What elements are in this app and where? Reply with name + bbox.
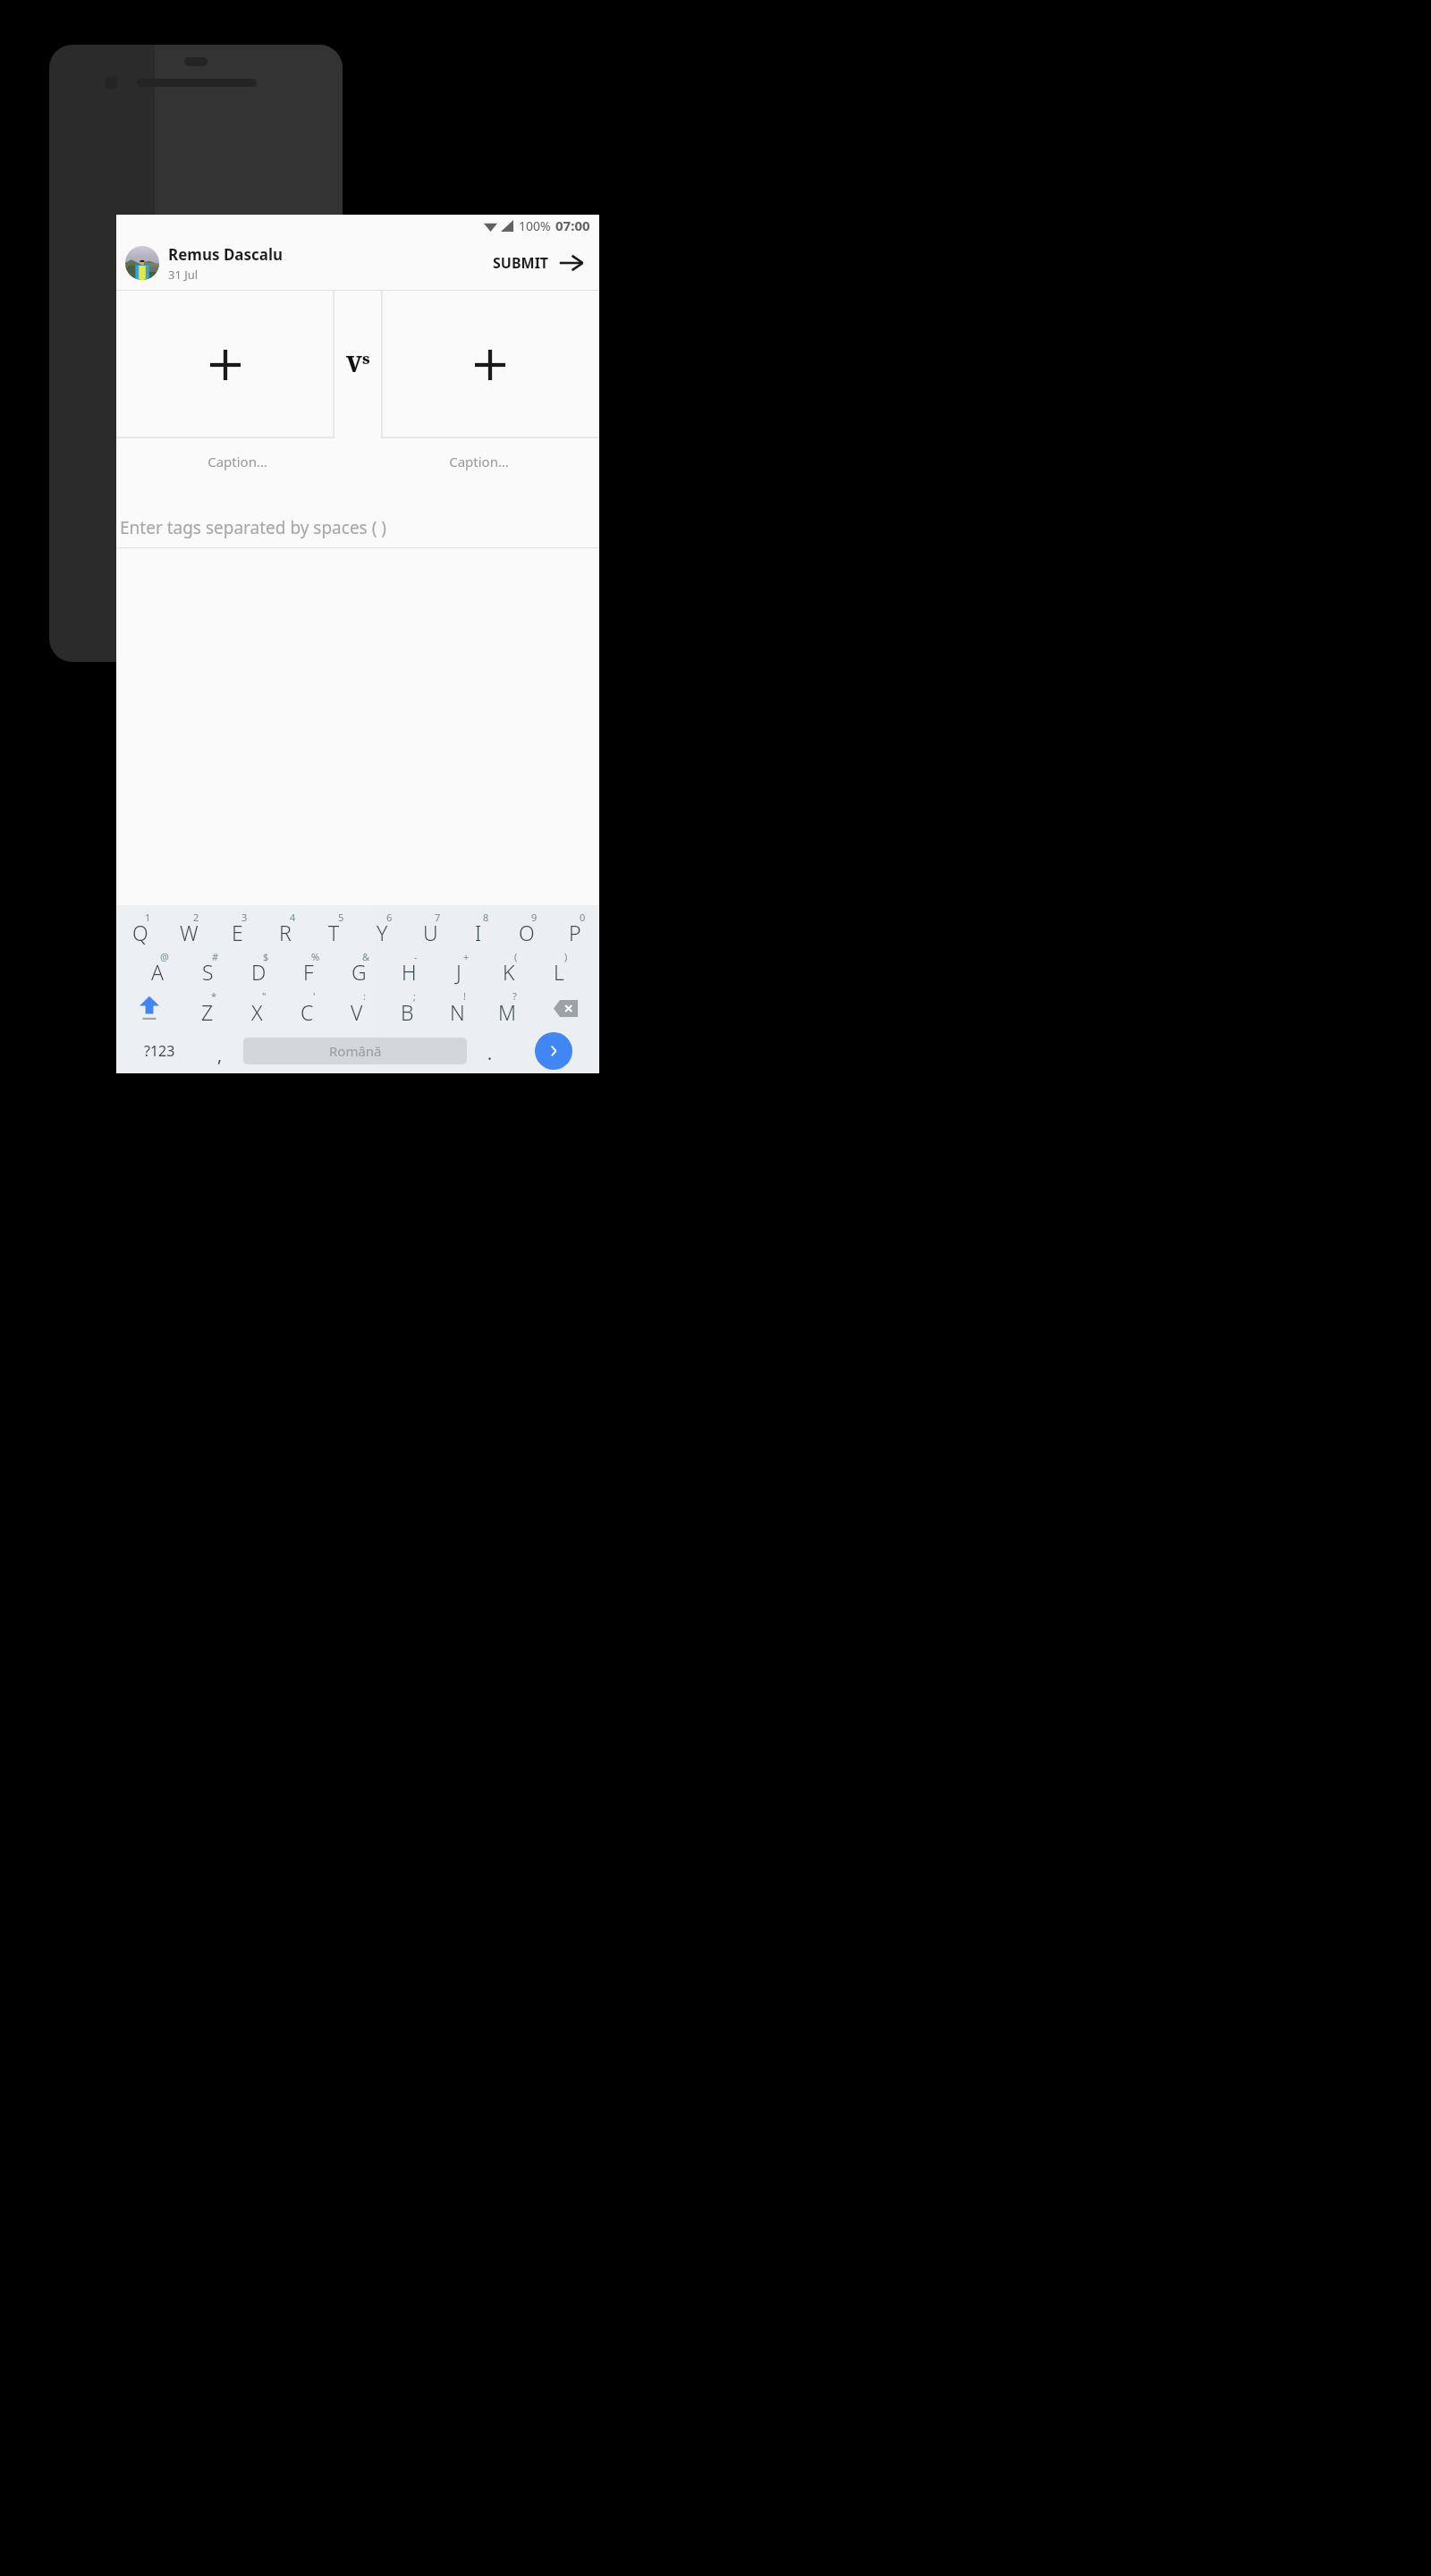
staticText: C xyxy=(301,998,314,1026)
staticText: T xyxy=(328,919,340,946)
staticText: 31 Jul xyxy=(168,267,199,283)
staticText: ' xyxy=(313,989,316,1003)
button[interactable]: 5 xyxy=(309,909,358,948)
button[interactable]: Enter xyxy=(535,1032,572,1070)
staticText: ( xyxy=(514,950,518,963)
button[interactable]: . xyxy=(467,1029,513,1073)
staticText: Z xyxy=(201,998,214,1026)
button[interactable]: 8 xyxy=(454,909,503,948)
staticText: D xyxy=(251,958,267,986)
button[interactable]: Enter tags separated by spaces ( ) xyxy=(116,508,599,547)
staticText: % xyxy=(311,950,320,963)
staticText: + xyxy=(463,950,470,963)
button[interactable]: 7 xyxy=(406,909,454,948)
staticText: # xyxy=(212,950,219,963)
staticText: P xyxy=(569,919,581,946)
button[interactable]: 6 xyxy=(358,909,406,948)
staticText: J xyxy=(456,958,461,986)
staticText: . xyxy=(487,1042,493,1065)
staticText: U xyxy=(423,919,438,946)
staticText: ) xyxy=(564,950,568,963)
staticText: L xyxy=(554,958,564,986)
button[interactable]: Add image xyxy=(116,291,334,438)
other: Profile picture xyxy=(125,246,159,280)
button[interactable]: ( xyxy=(484,948,534,987)
staticText: 1 xyxy=(145,911,151,924)
button[interactable]: # xyxy=(182,948,233,987)
staticText: 3 xyxy=(241,911,248,924)
staticText: V xyxy=(346,348,362,378)
button[interactable]: $ xyxy=(233,948,284,987)
button[interactable]: & xyxy=(334,948,384,987)
button[interactable]: 2 xyxy=(165,909,213,948)
staticText: S xyxy=(202,958,214,986)
button[interactable]: * xyxy=(182,987,232,1029)
staticText: @ xyxy=(160,950,169,963)
staticText: : xyxy=(363,989,366,1003)
staticText: 6 xyxy=(386,911,393,924)
staticText: V xyxy=(351,998,363,1026)
button[interactable]: + xyxy=(434,948,484,987)
button[interactable]: % xyxy=(284,948,334,987)
button[interactable]: @ xyxy=(131,948,182,987)
staticText: I xyxy=(475,919,482,946)
button[interactable]: 1 xyxy=(116,909,165,948)
staticText: 8 xyxy=(483,911,489,924)
staticText: R xyxy=(279,919,292,946)
button[interactable]: Caption… xyxy=(358,438,599,485)
staticText: E xyxy=(232,919,243,946)
staticText: Română xyxy=(329,1042,382,1060)
button[interactable]: 9 xyxy=(503,909,551,948)
button[interactable]: Add image xyxy=(381,291,599,438)
staticText: & xyxy=(362,950,370,963)
staticText: W xyxy=(180,919,199,946)
staticText: ; xyxy=(413,989,416,1003)
staticText: 2 xyxy=(193,911,199,924)
button[interactable]: 4 xyxy=(261,909,309,948)
button[interactable]: ) xyxy=(534,948,584,987)
staticText: X xyxy=(251,998,263,1026)
button[interactable]: Shift xyxy=(116,987,182,1029)
button[interactable]: ?123 xyxy=(122,1029,197,1073)
staticText: Remus Dascalu xyxy=(168,244,284,265)
staticText: 100% xyxy=(519,217,551,234)
staticText: B xyxy=(401,998,414,1026)
button[interactable]: - xyxy=(384,948,434,987)
staticText: s xyxy=(362,348,370,369)
staticText: * xyxy=(211,989,217,1003)
staticText: Caption… xyxy=(449,453,509,470)
staticText: H xyxy=(402,958,417,986)
staticText: , xyxy=(217,1044,223,1067)
staticText: Enter tags separated by spaces ( ) xyxy=(120,516,386,539)
staticText: SUBMIT xyxy=(493,253,549,273)
staticText: O xyxy=(519,919,535,946)
button[interactable]: Caption… xyxy=(116,438,358,485)
staticText: K xyxy=(503,958,515,986)
button[interactable]: : xyxy=(332,987,382,1029)
staticText: ? xyxy=(512,989,517,1003)
staticText: $ xyxy=(263,950,269,963)
staticText: G xyxy=(351,958,367,986)
staticText: 9 xyxy=(531,911,538,924)
button[interactable]: ' xyxy=(282,987,332,1029)
staticText: 07:00 xyxy=(555,216,590,234)
staticText: 5 xyxy=(338,911,344,924)
button[interactable]: ? xyxy=(482,987,532,1029)
staticText: 0 xyxy=(580,911,586,924)
staticText: Q xyxy=(132,919,148,946)
button[interactable]: " xyxy=(232,987,282,1029)
button[interactable]: 0 xyxy=(551,909,599,948)
staticText: ?123 xyxy=(144,1041,175,1061)
button[interactable]: ; xyxy=(382,987,432,1029)
button[interactable]: , xyxy=(197,1029,243,1073)
button[interactable]: 3 xyxy=(213,909,261,948)
staticText: ! xyxy=(463,989,466,1003)
staticText: F xyxy=(303,958,314,986)
staticText: 4 xyxy=(290,911,296,924)
staticText: 7 xyxy=(435,911,441,924)
button[interactable]: ! xyxy=(432,987,482,1029)
button[interactable]: Română xyxy=(243,1038,467,1064)
staticText: A xyxy=(151,958,164,986)
button[interactable]: SUBMIT xyxy=(487,244,590,282)
button[interactable]: Backspace xyxy=(532,987,599,1029)
